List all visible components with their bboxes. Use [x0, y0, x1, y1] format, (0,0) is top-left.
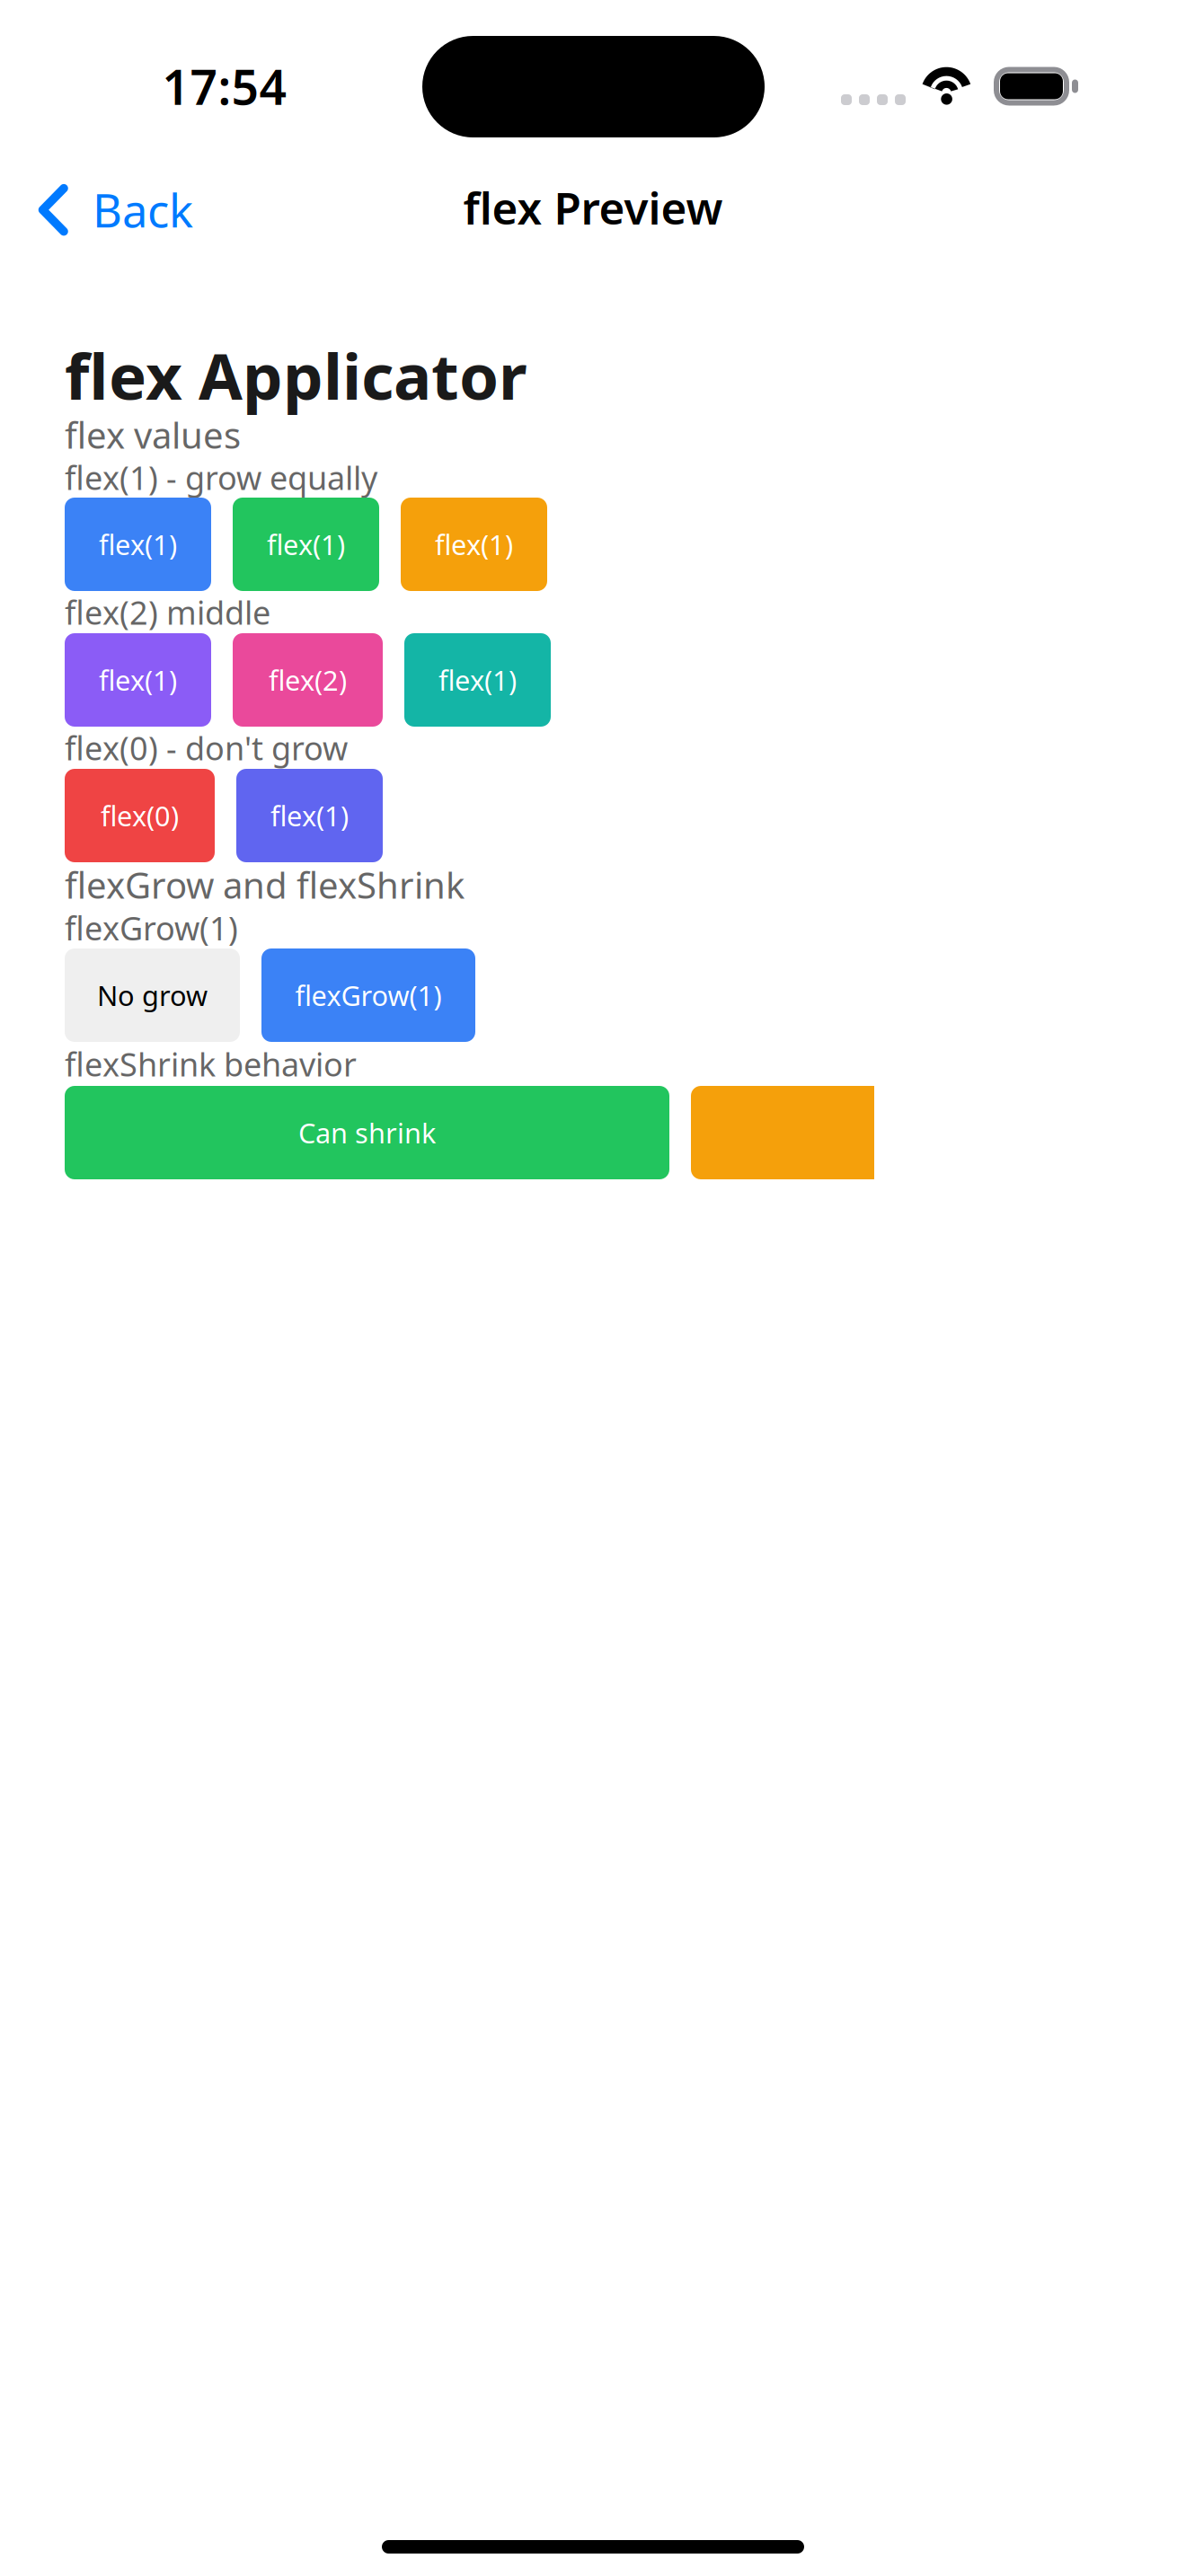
staticText: flex(1): [438, 662, 517, 698]
staticText: flex(2): [269, 662, 347, 698]
staticText: flex values: [65, 411, 241, 459]
staticText: flex(2) middle: [65, 591, 270, 634]
staticText: flex(0) - don't grow: [65, 726, 348, 769]
staticText: No grow: [97, 977, 208, 1013]
staticText: flex Preview: [463, 178, 723, 237]
staticText: Back: [93, 180, 193, 240]
staticText: flex(1): [270, 797, 349, 834]
staticText: flex(1): [267, 526, 345, 563]
button[interactable]: Back: [0, 167, 193, 253]
staticText: flexGrow and flexShrink: [65, 861, 465, 909]
staticText: flex Applicator: [65, 333, 527, 417]
staticText: flex(1): [435, 526, 513, 563]
staticText: flex(0): [101, 797, 179, 834]
staticText: flex(1): [99, 526, 177, 563]
staticText: flexShrink behavior: [65, 1042, 357, 1085]
staticText: Can shrink: [298, 1114, 436, 1151]
staticText: flexGrow(1): [295, 977, 442, 1013]
staticText: flex(1) - grow equally: [65, 456, 377, 499]
staticText: flex(1): [99, 662, 177, 698]
staticText: 17:54: [162, 54, 287, 118]
staticText: flexGrow(1): [65, 906, 238, 949]
